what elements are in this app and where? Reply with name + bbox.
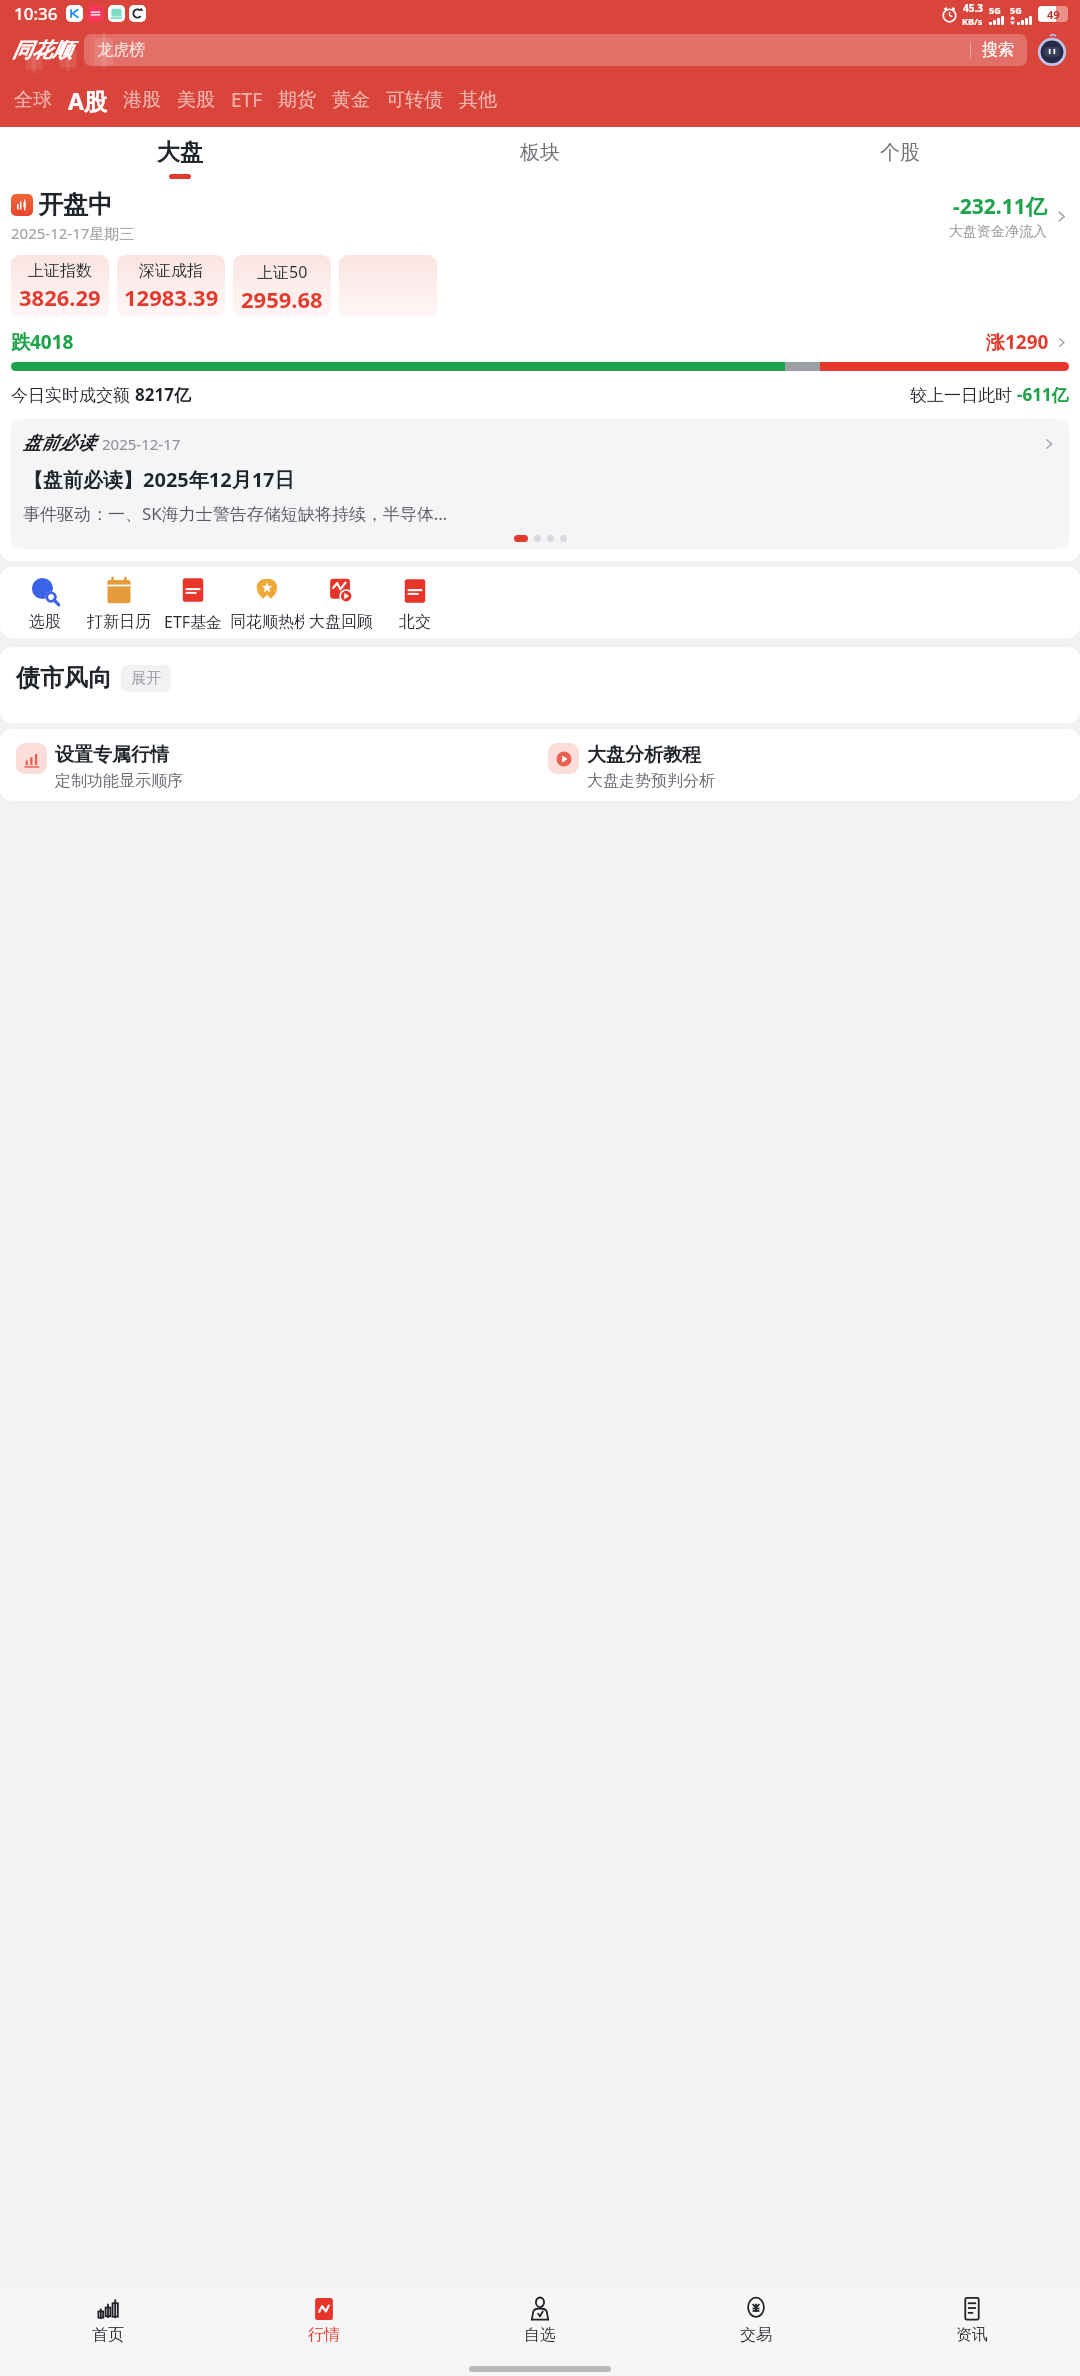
staticText: 大盘回顾: [309, 612, 373, 632]
staticText: 跌4018: [11, 329, 74, 355]
button[interactable]: 选股: [8, 574, 82, 632]
button[interactable]: 其他: [451, 88, 505, 112]
staticText: 大盘分析教程: [587, 743, 701, 767]
staticText: 盘前必读: [23, 432, 95, 455]
staticText: 开盘中: [38, 189, 113, 220]
staticText: 设置专属行情: [55, 743, 169, 767]
staticText: 资讯: [956, 2325, 988, 2345]
button[interactable]: 首页: [0, 2289, 216, 2351]
staticText: 较上一日此时: [910, 383, 1017, 406]
staticText: KB/s: [962, 15, 983, 27]
button[interactable]: 自选: [432, 2289, 648, 2351]
button[interactable]: 打新日历: [82, 574, 156, 632]
button[interactable]: 全球: [6, 88, 60, 112]
staticText: 3826.29: [19, 282, 101, 312]
staticText: 搜索: [982, 40, 1014, 60]
staticText: 事件驱动：一、SK海力士警告存储短缺将持续，半导体…: [23, 502, 448, 525]
button[interactable]: 可转债: [378, 88, 451, 112]
staticText: -611亿: [1017, 383, 1069, 406]
staticText: 打新日历: [87, 612, 151, 632]
staticText: 同花顺热榜: [230, 612, 304, 632]
staticText: 选股: [29, 612, 61, 632]
staticText: ETF基金: [164, 611, 223, 633]
staticText: 个股: [880, 140, 920, 165]
staticText: 大盘走势预判分析: [587, 771, 715, 791]
button[interactable]: [339, 255, 437, 317]
button[interactable]: 行情: [216, 2289, 432, 2351]
staticText: 板块: [520, 140, 560, 165]
button[interactable]: 资讯: [864, 2289, 1080, 2351]
staticText: 今日实时成交额: [11, 383, 135, 406]
staticText: A股: [68, 85, 107, 116]
button[interactable]: 开盘中: [0, 189, 1080, 243]
button[interactable]: 上证指数: [11, 255, 109, 317]
staticText: 同花顺: [12, 38, 72, 63]
button[interactable]: 设置专属行情: [16, 743, 548, 791]
button[interactable]: 深证成指: [117, 255, 225, 317]
staticText: 龙虎榜: [97, 40, 145, 60]
staticText: 其他: [459, 88, 497, 112]
button[interactable]: 上证50: [233, 255, 331, 317]
staticText: 上证50: [257, 261, 308, 283]
staticText: 10:36: [14, 2, 58, 25]
staticText: 2959.68: [241, 284, 323, 314]
staticText: 深证成指: [139, 261, 203, 281]
button[interactable]: 北交: [378, 574, 452, 632]
button[interactable]: 黄金: [324, 88, 378, 112]
staticText: 自选: [524, 2325, 556, 2345]
staticText: 定制功能显示顺序: [55, 771, 183, 791]
button[interactable]: 大盘回顾: [304, 574, 378, 632]
staticText: 45.3: [963, 1, 983, 15]
staticText: ETF: [231, 87, 262, 113]
staticText: 涨1290: [986, 329, 1049, 355]
staticText: 上证指数: [28, 261, 92, 281]
button[interactable]: 期货: [270, 88, 324, 112]
staticText: 全球: [14, 88, 52, 112]
staticText: 北交: [399, 612, 431, 632]
button[interactable]: 跌4018: [0, 329, 1080, 355]
button[interactable]: 板块: [360, 127, 720, 189]
staticText: 期货: [278, 88, 316, 112]
button[interactable]: 同花顺热榜: [230, 574, 304, 632]
staticText: -232.11亿: [953, 192, 1047, 221]
staticText: 债市风向: [16, 663, 112, 693]
button[interactable]: 美股: [169, 88, 223, 112]
staticText: 可转债: [386, 88, 443, 112]
button[interactable]: AI 智能助手: [1034, 32, 1070, 68]
staticText: 2025-12-17星期三: [11, 223, 135, 243]
button[interactable]: ETF: [223, 87, 270, 113]
staticText: 行情: [308, 2325, 340, 2345]
button[interactable]: 展开: [121, 665, 171, 692]
button[interactable]: 龙虎榜: [84, 34, 1027, 66]
staticText: 5G: [1010, 4, 1022, 16]
staticText: 5G: [989, 4, 1001, 16]
staticText: 黄金: [332, 88, 370, 112]
staticText: 首页: [92, 2325, 124, 2345]
staticText: 12983.39: [124, 282, 219, 312]
button[interactable]: 交易: [648, 2289, 864, 2351]
staticText: 交易: [740, 2325, 772, 2345]
button[interactable]: 大盘分析教程: [548, 743, 1080, 791]
button[interactable]: 个股: [720, 127, 1080, 189]
staticText: 美股: [177, 88, 215, 112]
staticText: 展开: [131, 669, 161, 688]
button[interactable]: A股: [60, 85, 115, 116]
button[interactable]: 盘前必读: [11, 419, 1069, 549]
staticText: 49: [1047, 7, 1060, 22]
staticText: 【盘前必读】2025年12月17日: [23, 466, 295, 493]
button[interactable]: 港股: [115, 88, 169, 112]
staticText: 大盘资金净流入: [949, 223, 1047, 241]
staticText: 8217亿: [135, 383, 191, 406]
staticText: 港股: [123, 88, 161, 112]
staticText: 大盘: [157, 138, 203, 167]
staticText: 2025-12-17: [102, 434, 181, 454]
button[interactable]: ETF基金: [156, 573, 230, 633]
button[interactable]: 大盘: [0, 127, 360, 189]
